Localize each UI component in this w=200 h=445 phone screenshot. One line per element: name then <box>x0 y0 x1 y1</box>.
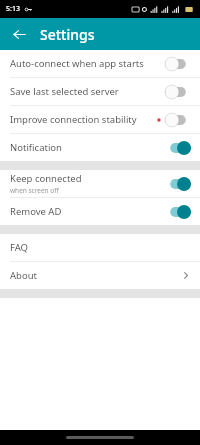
button[interactable]: Improve connection stability <box>0 106 200 133</box>
staticText: 5:13 <box>6 4 20 14</box>
staticText: FAQ <box>10 241 29 254</box>
button[interactable]: Notification <box>0 134 200 161</box>
button[interactable]: Back <box>8 23 30 45</box>
staticText: Auto-connect when app starts <box>10 57 144 70</box>
button[interactable]: Remove AD <box>0 198 200 225</box>
button[interactable]: Auto-connect when app starts <box>0 50 200 77</box>
staticText: Keep connected <box>10 172 82 185</box>
staticText: Improve connection stability <box>10 113 137 126</box>
button[interactable]: About <box>0 262 200 289</box>
button[interactable]: Save last selected server <box>0 78 200 105</box>
staticText: Remove AD <box>10 205 62 218</box>
button[interactable]: Keep connected <box>0 170 200 197</box>
staticText: About <box>10 269 37 282</box>
button[interactable]: FAQ <box>0 234 200 261</box>
staticText: when screen off <box>10 186 59 195</box>
staticText: Save last selected server <box>10 85 119 98</box>
staticText: Notification <box>10 141 62 154</box>
staticText: Settings <box>40 25 95 44</box>
